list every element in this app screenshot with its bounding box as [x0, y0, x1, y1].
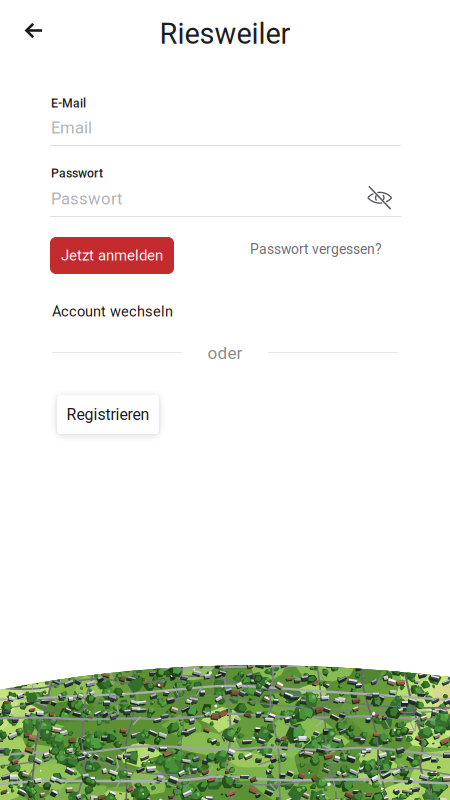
staticText: E-Mail [51, 96, 86, 110]
button[interactable]: Passwort vergessen? [250, 241, 382, 257]
button[interactable]: Show password [366, 184, 393, 211]
staticText: Account wechseln [52, 303, 173, 320]
button[interactable]: Back [14, 12, 53, 50]
button[interactable]: Jetzt anmelden [50, 237, 174, 274]
button[interactable]: Account wechseln [52, 303, 173, 320]
staticText: Jetzt anmelden [61, 247, 163, 264]
staticText: Passwort vergessen? [250, 241, 382, 257]
staticText: Email [51, 118, 92, 137]
staticText: Passwort [51, 189, 122, 208]
button[interactable]: Registrieren [57, 395, 159, 434]
staticText: oder [207, 343, 242, 363]
staticText: Registrieren [66, 405, 149, 424]
staticText: Passwort [51, 166, 103, 180]
staticText: Riesweiler [159, 17, 290, 51]
